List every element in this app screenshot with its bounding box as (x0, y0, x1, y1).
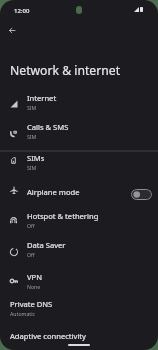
button[interactable]: SIMs (0, 149, 158, 178)
button[interactable]: Calls & SMS (0, 118, 158, 147)
staticText: Automatic (10, 310, 35, 317)
staticText: Off (27, 251, 35, 258)
staticText: Network & internet (10, 62, 121, 79)
staticText: Private DNS (10, 299, 53, 309)
button[interactable]: Back (3, 21, 21, 39)
button[interactable]: Internet (0, 89, 158, 118)
button[interactable]: VPN (0, 268, 158, 297)
staticText: SIM (27, 164, 37, 171)
staticText: Hotspot & tethering (27, 211, 99, 221)
staticText: SIM (27, 104, 37, 111)
button[interactable]: Adaptive connectivity (0, 327, 158, 350)
staticText: 12:00 (14, 7, 30, 15)
staticText: VPN (27, 272, 42, 282)
staticText: Data Saver (27, 240, 66, 250)
staticText: Calls & SMS (27, 122, 69, 132)
button[interactable]: Hotspot & tethering (0, 207, 158, 236)
button[interactable]: Airplane mode toggle (131, 189, 152, 200)
staticText: SIMs (27, 153, 45, 163)
button[interactable]: Data Saver (0, 236, 158, 265)
staticText: Internet (27, 93, 57, 103)
button[interactable]: Private DNS (0, 295, 158, 324)
staticText: SIM (27, 133, 37, 140)
staticText: Adaptive connectivity (10, 331, 86, 341)
staticText: Off (27, 222, 35, 229)
staticText: None (27, 283, 41, 290)
staticText: Airplane mode (27, 187, 80, 197)
button[interactable]: Airplane mode (0, 180, 158, 204)
